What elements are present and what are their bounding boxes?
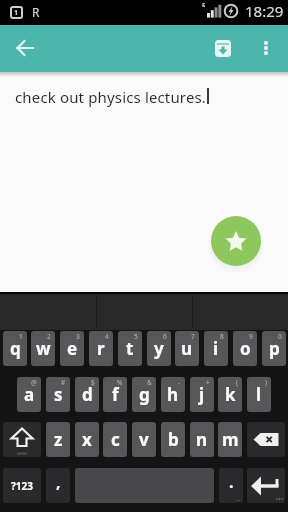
button[interactable]: u <box>175 331 199 366</box>
staticText: E <box>202 1 206 9</box>
staticText: b <box>168 428 179 451</box>
staticText: e <box>67 337 78 360</box>
staticText: q <box>10 337 21 360</box>
staticText: + <box>206 378 210 387</box>
button[interactable]: n <box>190 422 214 457</box>
button[interactable]: d <box>75 377 99 412</box>
staticText: 3 <box>76 332 80 341</box>
button[interactable]: i <box>204 331 228 366</box>
staticText: p <box>269 337 280 360</box>
button[interactable] <box>247 422 285 457</box>
button[interactable]: v <box>132 422 156 457</box>
button[interactable]: x <box>75 422 99 457</box>
button[interactable]: m <box>218 422 242 457</box>
button[interactable] <box>211 216 261 266</box>
staticText: d <box>82 383 93 406</box>
button[interactable]: , <box>46 468 70 503</box>
staticText: 7 <box>191 332 195 341</box>
staticText: 8 <box>220 332 224 341</box>
staticText: check out physics lectures. <box>15 87 207 107</box>
staticText: ( <box>236 378 238 387</box>
button[interactable]: q <box>3 331 27 366</box>
staticText: m <box>222 428 239 451</box>
button[interactable]: g <box>132 377 156 412</box>
staticText: h <box>167 383 179 406</box>
staticText: 18:29 <box>245 1 284 21</box>
staticText: 6 <box>163 332 167 341</box>
button[interactable]: ?123 <box>3 468 41 503</box>
staticText: 4 <box>105 332 109 341</box>
button[interactable]: a <box>17 377 41 412</box>
staticText: 9 <box>249 332 253 341</box>
staticText: 0 <box>278 332 282 341</box>
staticText: 1 <box>19 332 23 341</box>
staticText: j <box>199 383 205 406</box>
staticText: , <box>56 471 61 493</box>
button[interactable] <box>207 33 239 65</box>
staticText: $ <box>91 378 95 387</box>
button[interactable]: h <box>161 377 185 412</box>
staticText: R <box>32 4 40 20</box>
button[interactable] <box>3 422 41 457</box>
staticText: . <box>229 471 234 493</box>
staticText: t <box>126 337 134 360</box>
button[interactable] <box>8 33 40 65</box>
button[interactable]: k <box>218 377 242 412</box>
staticText: o <box>240 337 251 360</box>
staticText: k <box>225 383 236 406</box>
staticText: a <box>24 383 35 406</box>
staticText: x <box>82 428 92 451</box>
staticText: c <box>111 428 120 451</box>
button[interactable]: w <box>31 331 55 366</box>
staticText: s <box>54 383 63 406</box>
button[interactable]: e <box>60 331 84 366</box>
staticText: ) <box>265 378 267 387</box>
staticText: & <box>147 378 152 387</box>
button[interactable]: z <box>46 422 70 457</box>
staticText: v <box>139 428 149 451</box>
button[interactable]: c <box>103 422 127 457</box>
button[interactable]: o <box>233 331 257 366</box>
staticText: i <box>213 337 219 360</box>
button[interactable]: y <box>147 331 171 366</box>
staticText: u <box>181 337 193 360</box>
button[interactable]: b <box>161 422 185 457</box>
button[interactable]: . <box>219 468 243 503</box>
staticText: n <box>196 428 208 451</box>
staticText: 5 <box>134 332 138 341</box>
button[interactable]: l <box>247 377 271 412</box>
staticText: ?123 <box>11 479 33 493</box>
staticText: 1 <box>14 8 19 18</box>
staticText: % <box>117 378 123 387</box>
staticText: - <box>178 378 181 387</box>
staticText: f <box>112 383 119 406</box>
staticText: # <box>61 378 66 387</box>
staticText: l <box>256 383 262 406</box>
button[interactable] <box>250 33 282 65</box>
staticText: 2 <box>47 332 51 341</box>
button[interactable] <box>247 468 285 503</box>
button[interactable]: t <box>118 331 142 366</box>
staticText: w <box>36 337 51 360</box>
button[interactable]: f <box>103 377 127 412</box>
staticText: z <box>54 428 63 451</box>
staticText: y <box>154 337 164 360</box>
button[interactable]: r <box>89 331 113 366</box>
staticText: ... <box>236 496 241 503</box>
staticText: g <box>139 383 150 406</box>
staticText: @ <box>31 378 37 387</box>
button[interactable]: p <box>262 331 286 366</box>
button[interactable]: j <box>190 377 214 412</box>
button[interactable]: s <box>46 377 70 412</box>
staticText: r <box>97 337 105 360</box>
